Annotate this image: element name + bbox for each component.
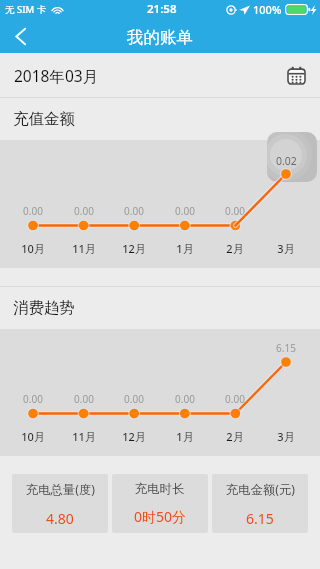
staticText: 11月 <box>72 429 96 444</box>
staticText: 1月 <box>176 241 194 256</box>
staticText: 无 SIM 卡 <box>5 3 47 16</box>
staticText: 0.02 <box>276 154 297 168</box>
staticText: 0.00 <box>225 392 245 406</box>
staticText: 0.00 <box>23 204 43 218</box>
staticText: 0.00 <box>175 204 195 218</box>
staticText: 充电时长 <box>135 481 185 496</box>
button[interactable]: Back <box>0 20 42 53</box>
staticText: 2018年03月 <box>14 65 99 86</box>
staticText: 21:58 <box>147 1 177 17</box>
staticText: 0.00 <box>74 392 94 406</box>
button[interactable]: 充电时长 <box>112 474 208 533</box>
staticText: 充电总量(度) <box>26 481 95 498</box>
staticText: 10月 <box>21 241 45 256</box>
staticText: 3月 <box>277 429 295 444</box>
staticText: 6.15 <box>276 341 296 355</box>
staticText: 2月 <box>226 241 244 256</box>
staticText: 6.15 <box>246 509 274 528</box>
button[interactable]: 2018年03月 <box>0 53 320 97</box>
staticText: 0.00 <box>225 204 245 218</box>
staticText: 12月 <box>122 429 146 444</box>
staticText: 0.00 <box>175 392 195 406</box>
button[interactable]: 充电总量(度) <box>12 474 108 533</box>
staticText: 0.00 <box>124 392 144 406</box>
staticText: 0.00 <box>23 392 43 406</box>
staticText: 0.00 <box>74 204 94 218</box>
staticText: 2月 <box>226 429 244 444</box>
staticText: 0.00 <box>124 204 144 218</box>
button[interactable]: 充电金额(元) <box>212 474 308 533</box>
staticText: 消费趋势 <box>13 298 75 318</box>
staticText: 12月 <box>122 241 146 256</box>
staticText: 100% <box>253 2 282 17</box>
staticText: 1月 <box>176 429 194 444</box>
staticText: 11月 <box>72 241 96 256</box>
staticText: 3月 <box>277 241 295 256</box>
other: Select month <box>287 66 306 85</box>
staticText: 充值金额 <box>13 109 75 129</box>
staticText: 我的账单 <box>127 27 193 48</box>
staticText: 充电金额(元) <box>226 481 295 498</box>
staticText: 10月 <box>21 429 45 444</box>
staticText: 0时50分 <box>134 507 187 526</box>
staticText: 4.80 <box>46 509 74 528</box>
